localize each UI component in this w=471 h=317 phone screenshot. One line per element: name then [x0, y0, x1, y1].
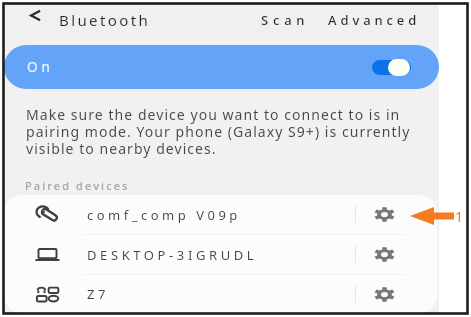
button[interactable]: Device settings [356, 235, 437, 274]
button[interactable]: Scan [257, 7, 314, 33]
staticText: comf_comp V09p [87, 206, 241, 224]
staticText: Bluetooth [59, 10, 151, 30]
button[interactable]: DESKTOP-3IGRUDL [4, 235, 437, 274]
staticText: Paired devices [25, 178, 130, 193]
button[interactable]: Bluetooth [56, 6, 154, 34]
button[interactable]: comf_comp V09p [4, 195, 437, 234]
staticText: On [27, 58, 54, 76]
button[interactable]: Advanced [324, 7, 425, 33]
staticText: Scan [261, 11, 310, 29]
button[interactable]: On [4, 45, 439, 89]
staticText: 1 [455, 207, 464, 226]
button[interactable]: Back [18, 2, 53, 29]
staticText: DESKTOP-3IGRUDL [87, 246, 258, 264]
staticText: Advanced [328, 11, 421, 29]
staticText: Make sure the device you want to connect… [26, 105, 416, 159]
staticText: Z7 [87, 285, 109, 303]
button[interactable]: Device settings [356, 275, 437, 313]
button[interactable]: Device settings [356, 195, 437, 234]
button[interactable]: Z7 [4, 275, 437, 313]
